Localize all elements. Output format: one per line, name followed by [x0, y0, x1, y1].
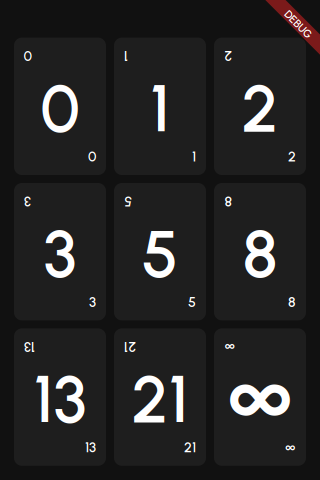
staticText: 8	[288, 294, 296, 310]
staticText: ∞	[285, 439, 296, 456]
staticText: 1	[150, 70, 170, 148]
button[interactable]: 13	[14, 328, 106, 466]
staticText: 0	[24, 48, 32, 64]
staticText: DEBUG	[282, 18, 316, 31]
staticText: 3	[89, 294, 96, 310]
staticText: 8	[224, 193, 232, 210]
button[interactable]: ∞	[214, 328, 306, 466]
staticText: 0	[40, 70, 79, 148]
staticText: 13	[85, 439, 96, 456]
staticText: 2	[288, 148, 296, 165]
staticText: 13	[33, 360, 86, 439]
staticText: ∞	[224, 338, 235, 355]
button[interactable]: 5	[114, 183, 206, 320]
staticText: 1	[124, 48, 128, 64]
staticText: 5	[141, 215, 178, 293]
button[interactable]: 2	[214, 38, 306, 175]
staticText: 3	[43, 215, 76, 293]
staticText: 5	[124, 193, 132, 210]
button[interactable]: 1	[114, 38, 206, 175]
staticText: 8	[242, 215, 277, 293]
staticText: ∞	[226, 343, 293, 450]
staticText: 3	[24, 193, 31, 210]
button[interactable]: 21	[114, 328, 206, 466]
staticText: 21	[131, 360, 188, 439]
staticText: 21	[184, 439, 196, 456]
staticText: 2	[224, 48, 232, 64]
staticText: 1	[192, 148, 196, 165]
button[interactable]: 0	[14, 38, 106, 175]
staticText: 2	[241, 70, 278, 148]
button[interactable]: 8	[214, 183, 306, 320]
staticText: 13	[24, 338, 35, 355]
staticText: 21	[124, 338, 136, 355]
staticText: 0	[88, 148, 96, 165]
staticText: 5	[188, 294, 196, 310]
button[interactable]: 3	[14, 183, 106, 320]
